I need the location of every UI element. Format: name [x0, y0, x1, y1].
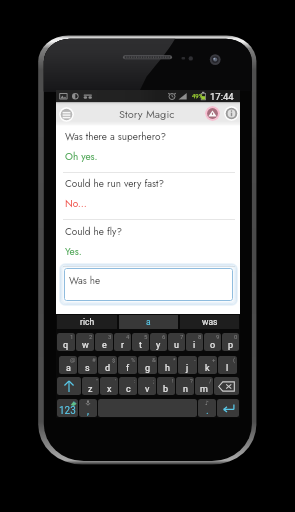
staticText: r: [121, 340, 125, 351]
button[interactable]: (: [218, 356, 237, 374]
staticText: b: [163, 384, 169, 395]
button[interactable]: 1: [57, 333, 75, 351]
staticText: m: [200, 384, 208, 395]
staticText: Story Magic: [119, 106, 175, 122]
button[interactable]: 9: [204, 333, 221, 351]
button[interactable]: $: [98, 356, 117, 374]
button[interactable]: 8: [186, 333, 203, 351]
staticText: i: [193, 340, 196, 351]
button[interactable]: 0: [222, 333, 239, 351]
staticText: y: [156, 340, 161, 351]
staticText: -: [194, 356, 196, 363]
staticText: &: [152, 356, 156, 363]
staticText: Could he run very fast?: [65, 176, 165, 190]
staticText: z: [88, 384, 93, 395]
button[interactable]: +: [198, 356, 217, 374]
button[interactable]: enter: [217, 399, 239, 417]
button[interactable]: ?: [176, 377, 194, 395]
button[interactable]: 6: [150, 333, 167, 351]
button[interactable]: shift: [57, 377, 81, 395]
staticText: 5: [144, 333, 148, 340]
button[interactable]: Was he: [64, 268, 233, 301]
staticText: v: [145, 384, 150, 395]
button[interactable]: rich: [57, 315, 117, 329]
staticText: w: [82, 340, 89, 351]
staticText: e: [102, 340, 107, 351]
staticText: 7: [180, 333, 184, 340]
staticText: .: [206, 405, 209, 417]
staticText: 123: [59, 405, 76, 417]
button[interactable]: &: [138, 356, 157, 374]
button[interactable]: ": [82, 377, 99, 395]
staticText: p: [228, 340, 234, 351]
staticText: /: [209, 377, 212, 384]
button[interactable]: comma: [79, 399, 97, 417]
staticText: No...: [65, 196, 87, 210]
button[interactable]: ;: [138, 377, 156, 395]
button[interactable]: 2: [76, 333, 94, 351]
staticText: a: [66, 363, 71, 374]
staticText: ": [96, 377, 98, 384]
button[interactable]: was: [180, 315, 239, 329]
button[interactable]: Menu: [59, 107, 74, 122]
staticText: x: [107, 384, 112, 395]
staticText: @: [70, 356, 76, 363]
staticText: Yes.: [65, 244, 82, 258]
staticText: 9: [216, 333, 220, 340]
staticText: k: [205, 363, 210, 374]
button[interactable]: %: [118, 356, 137, 374]
button[interactable]: -: [178, 356, 197, 374]
button[interactable]: /: [195, 377, 213, 395]
staticText: 49%: [192, 92, 204, 99]
button[interactable]: 3: [95, 333, 113, 351]
staticText: 6: [162, 333, 166, 340]
staticText: ': [115, 377, 117, 384]
staticText: #: [92, 356, 96, 363]
staticText: ;: [153, 377, 155, 384]
staticText: Oh yes.: [65, 149, 98, 163]
button[interactable]: del: [214, 377, 239, 395]
staticText: a: [146, 317, 151, 327]
staticText: u: [174, 340, 179, 351]
button[interactable]: period: [198, 399, 216, 417]
staticText: h: [165, 363, 170, 374]
button[interactable]: 5: [132, 333, 149, 351]
staticText: ?: [190, 377, 193, 384]
staticText: Was he: [69, 273, 101, 287]
staticText: ,: [87, 405, 89, 417]
staticText: %: [131, 356, 136, 363]
staticText: g: [145, 363, 151, 374]
button[interactable]: Info: [224, 106, 239, 121]
staticText: +: [212, 356, 216, 363]
staticText: 1: [70, 333, 74, 340]
staticText: ♪: [205, 399, 209, 406]
staticText: f: [126, 363, 130, 374]
button[interactable]: #: [78, 356, 97, 374]
button[interactable]: a: [119, 315, 178, 329]
staticText: q: [63, 340, 69, 351]
staticText: was: [202, 317, 218, 327]
staticText: j: [186, 363, 189, 374]
staticText: o: [210, 340, 216, 351]
staticText: :: [134, 377, 136, 384]
button[interactable]: *: [158, 356, 177, 374]
button[interactable]: 123: [57, 399, 78, 417]
button[interactable]: ': [100, 377, 118, 395]
button[interactable]: Alert: [205, 106, 220, 121]
staticText: 8: [198, 333, 202, 340]
staticText: (: [233, 356, 236, 363]
staticText: rich: [80, 317, 95, 327]
staticText: s: [85, 363, 90, 374]
staticText: t: [139, 340, 142, 351]
button[interactable]: 4: [114, 333, 131, 351]
staticText: 3: [108, 333, 112, 340]
button[interactable]: @: [59, 356, 77, 374]
staticText: Could he fly?: [65, 224, 123, 238]
staticText: 17:44: [210, 91, 234, 102]
button[interactable]: 7: [168, 333, 185, 351]
staticText: !: [172, 377, 174, 384]
button[interactable]: :: [119, 377, 137, 395]
staticText: *: [173, 356, 176, 363]
button[interactable]: !: [157, 377, 175, 395]
